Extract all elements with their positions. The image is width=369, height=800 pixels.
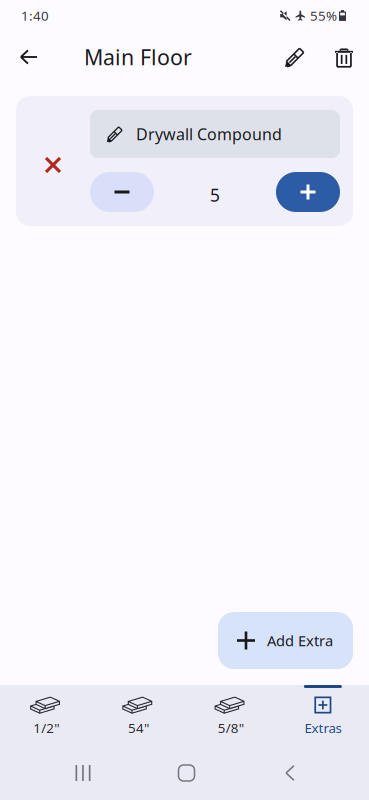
button[interactable]: Delete bbox=[322, 33, 366, 81]
staticText: Drywall Compound bbox=[136, 123, 282, 145]
button[interactable]: Decrease quantity bbox=[90, 172, 154, 212]
button[interactable]: Back bbox=[256, 750, 324, 796]
button[interactable]: Edit bbox=[268, 33, 322, 81]
button[interactable]: 1/2" bbox=[0, 685, 92, 746]
staticText: 55% bbox=[310, 7, 337, 24]
staticText: 1/2" bbox=[33, 719, 59, 737]
staticText: 1:40 bbox=[21, 7, 49, 24]
staticText: 54" bbox=[128, 719, 149, 737]
staticText: 5 bbox=[210, 183, 220, 206]
button[interactable]: 5/8" bbox=[184, 685, 277, 746]
staticText: 5/8" bbox=[218, 719, 244, 737]
button[interactable]: Home bbox=[152, 750, 220, 796]
button[interactable]: Add Extra bbox=[218, 612, 353, 669]
staticText: Add Extra bbox=[267, 631, 333, 650]
button[interactable]: Extras bbox=[277, 685, 369, 746]
staticText: Extras bbox=[304, 719, 341, 737]
staticText: Main Floor bbox=[84, 43, 192, 71]
button[interactable]: Increase quantity bbox=[276, 172, 340, 212]
button[interactable]: Remove extra bbox=[16, 137, 90, 185]
button[interactable]: 54" bbox=[92, 685, 184, 746]
button[interactable]: Back bbox=[8, 33, 49, 81]
button[interactable]: Recents bbox=[49, 750, 117, 796]
